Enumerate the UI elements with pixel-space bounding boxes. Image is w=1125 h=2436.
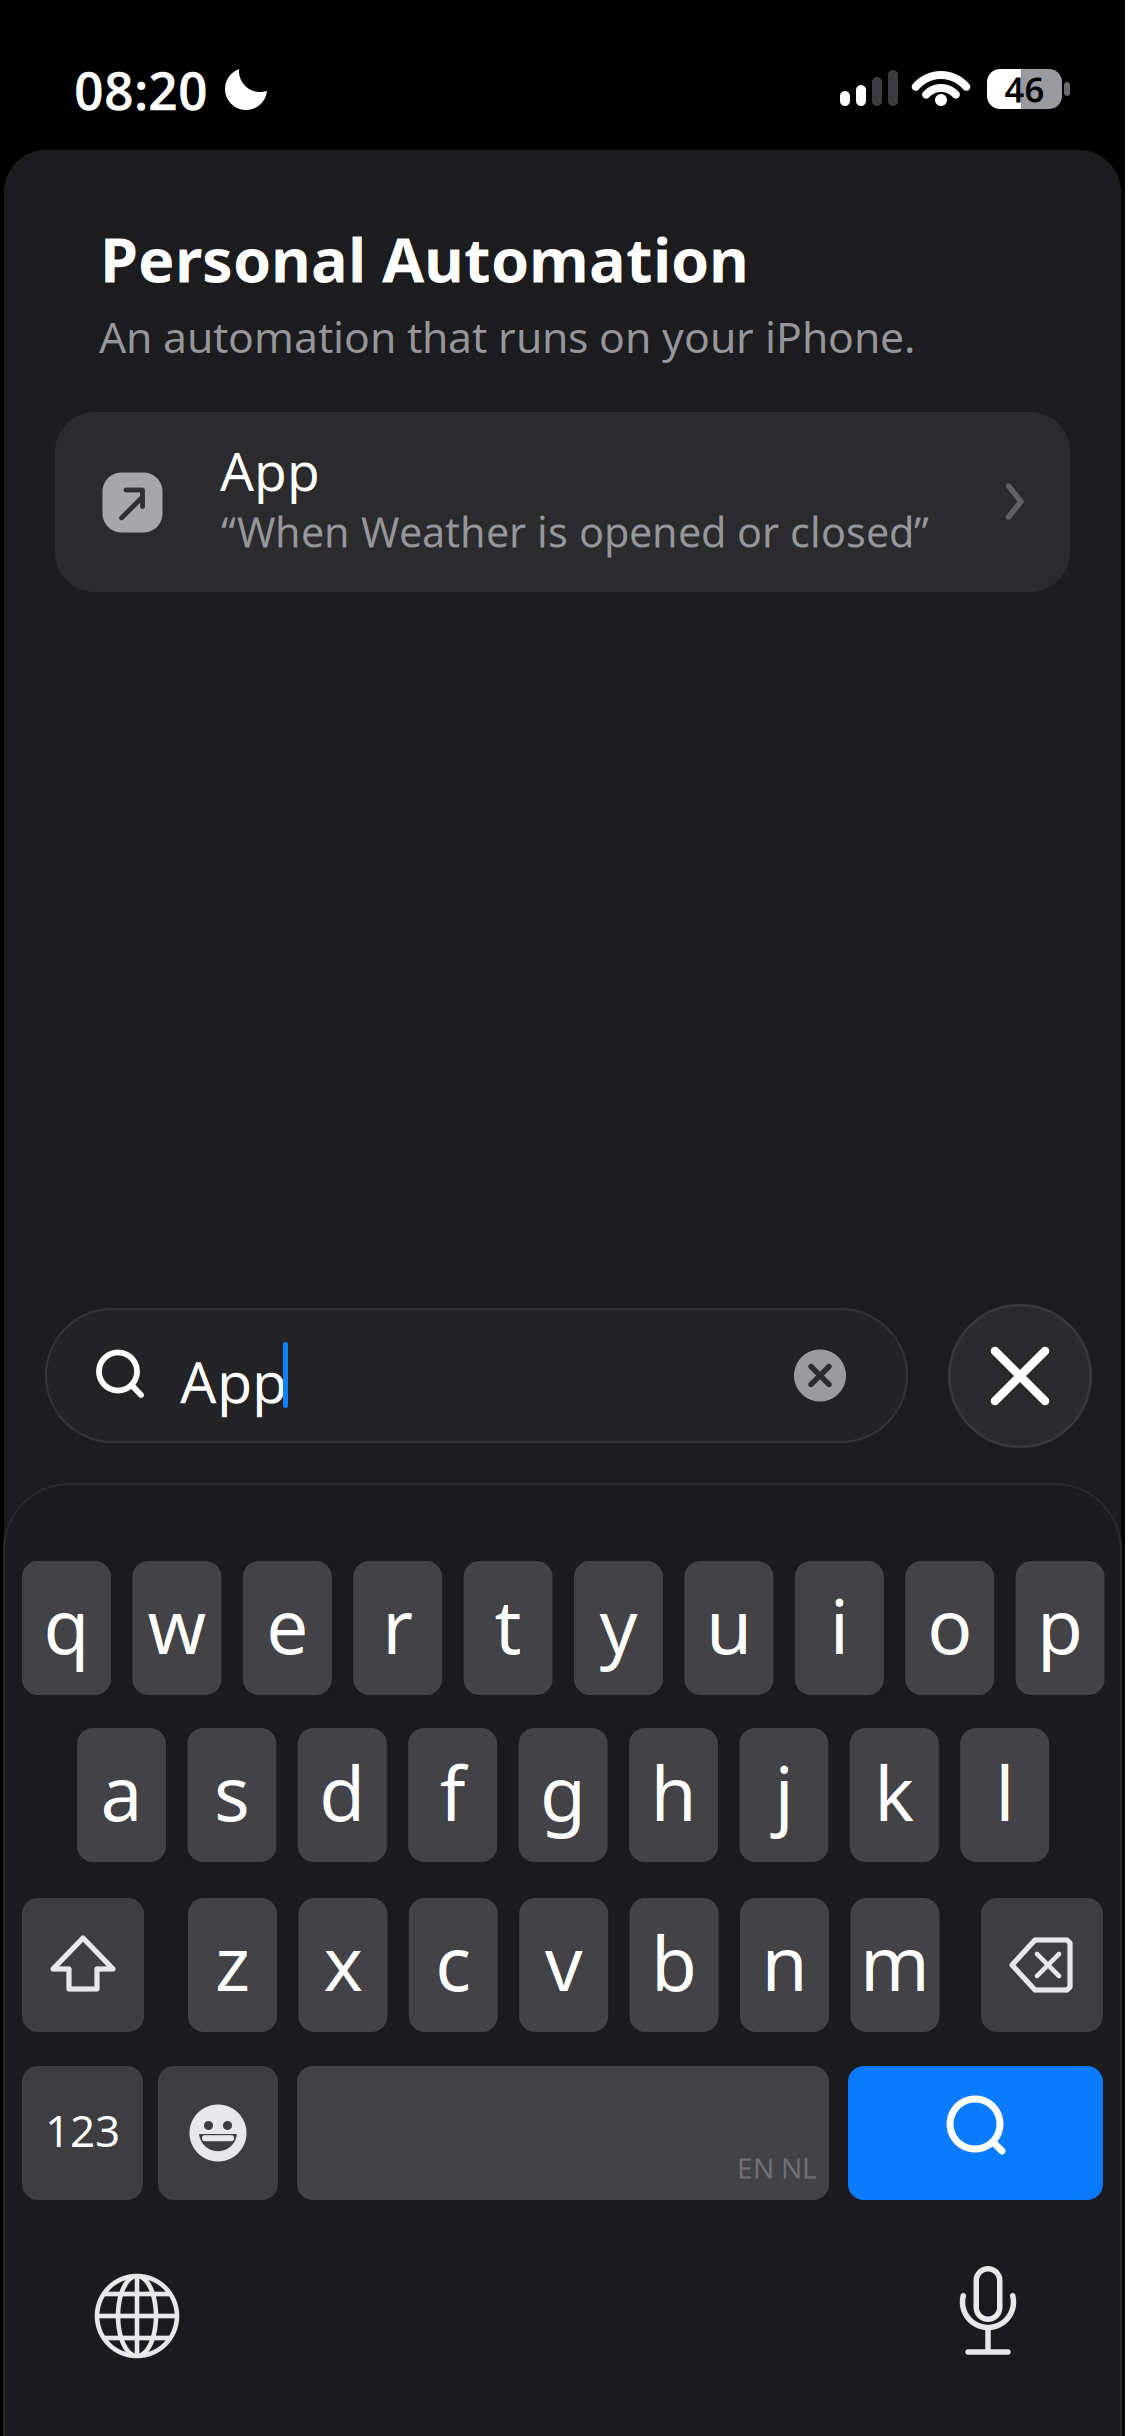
staticText: f <box>440 1742 466 1842</box>
button[interactable] <box>981 1898 1103 2032</box>
button[interactable]: k <box>850 1728 939 1862</box>
staticText: Personal Automation <box>100 218 749 299</box>
button[interactable]: c <box>409 1898 498 2032</box>
button[interactable]: e <box>243 1561 332 1695</box>
staticText: 46 <box>1004 66 1044 112</box>
staticText: l <box>995 1742 1014 1842</box>
staticText: o <box>927 1575 972 1675</box>
button[interactable]: x <box>298 1898 387 2032</box>
staticText: n <box>761 1912 807 2012</box>
staticText: q <box>43 1575 89 1675</box>
staticText: k <box>874 1742 914 1842</box>
staticText: u <box>706 1575 752 1675</box>
button[interactable]: a <box>77 1728 166 1862</box>
staticText: 123 <box>45 2101 120 2159</box>
staticText: s <box>214 1742 250 1842</box>
staticText: r <box>382 1575 413 1675</box>
staticText: “When Weather is opened or closed” <box>221 504 929 559</box>
staticText: c <box>435 1912 471 2012</box>
button[interactable]: 123 <box>22 2066 143 2200</box>
button[interactable]: App <box>45 1308 908 1443</box>
staticText: i <box>830 1575 849 1675</box>
staticText: e <box>266 1575 308 1675</box>
staticText: x <box>323 1912 362 2012</box>
button[interactable]: v <box>519 1898 608 2032</box>
staticText: p <box>1037 1575 1083 1675</box>
staticText: w <box>147 1575 206 1675</box>
staticText: m <box>860 1912 930 2012</box>
button[interactable] <box>22 1898 144 2032</box>
staticText: j <box>774 1742 793 1842</box>
button[interactable]: q <box>22 1561 111 1695</box>
button[interactable]: b <box>630 1898 719 2032</box>
button[interactable]: g <box>519 1728 608 1862</box>
button[interactable] <box>158 2066 278 2200</box>
button[interactable]: l <box>960 1728 1049 1862</box>
staticText: App <box>180 1343 287 1419</box>
button[interactable]: r <box>353 1561 442 1695</box>
staticText: y <box>599 1575 637 1675</box>
staticText: EN NL <box>737 2149 817 2186</box>
button[interactable]: w <box>132 1561 221 1695</box>
button[interactable]: f <box>408 1728 497 1862</box>
button[interactable]: App <box>55 412 1070 592</box>
button[interactable]: o <box>905 1561 994 1695</box>
button[interactable] <box>943 2258 1033 2358</box>
staticText: An automation that runs on your iPhone. <box>99 308 915 365</box>
button[interactable]: EN NL <box>297 2066 829 2200</box>
staticText: t <box>495 1575 522 1675</box>
staticText: b <box>651 1912 697 2012</box>
staticText: z <box>215 1912 250 2012</box>
button[interactable] <box>948 1304 1092 1448</box>
button[interactable]: p <box>1016 1561 1105 1695</box>
button[interactable] <box>92 2271 182 2361</box>
staticText: 08:20 <box>74 55 208 125</box>
staticText: App <box>220 435 320 506</box>
staticText: h <box>650 1742 696 1842</box>
button[interactable]: m <box>850 1898 939 2032</box>
staticText: g <box>540 1742 586 1842</box>
button[interactable]: t <box>464 1561 553 1695</box>
button[interactable]: u <box>684 1561 773 1695</box>
button[interactable]: z <box>188 1898 277 2032</box>
button[interactable]: i <box>795 1561 884 1695</box>
button[interactable]: y <box>574 1561 663 1695</box>
staticText: a <box>100 1742 142 1842</box>
button[interactable]: h <box>629 1728 718 1862</box>
button[interactable] <box>848 2066 1103 2200</box>
staticText: v <box>545 1912 583 2012</box>
button[interactable]: n <box>740 1898 829 2032</box>
button[interactable]: s <box>187 1728 276 1862</box>
staticText: d <box>319 1742 365 1842</box>
button[interactable]: j <box>739 1728 828 1862</box>
button[interactable]: d <box>298 1728 387 1862</box>
